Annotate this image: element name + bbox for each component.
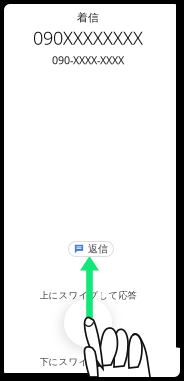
button[interactable]: 返信 (68, 241, 113, 256)
staticText: 返信 (88, 243, 108, 255)
staticText: 090XXXXXXXX (33, 25, 143, 50)
staticText: 下にスワイプして拒否 (39, 356, 136, 368)
staticText: 090-XXXX-XXXX (52, 53, 124, 67)
staticText: 上にスワイプして応答 (39, 290, 136, 301)
staticText: 着信 (77, 11, 99, 24)
